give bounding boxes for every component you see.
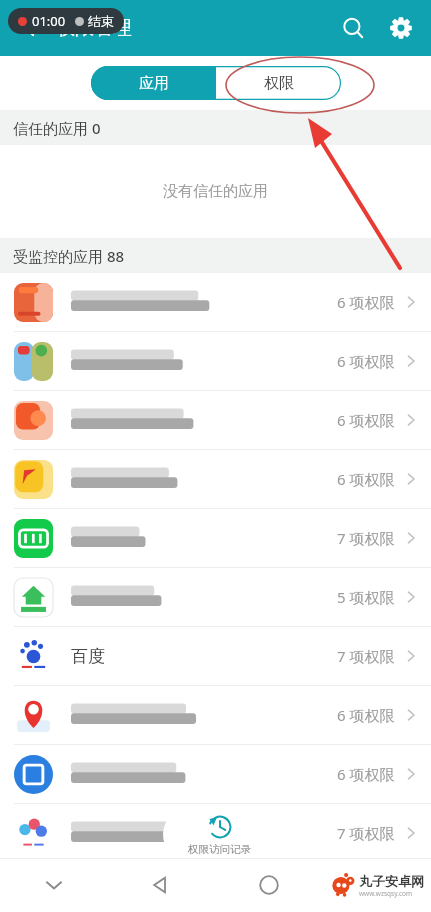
staticText: www.wzsqsy.com [359,889,413,898]
button[interactable]: 5 项权限 [0,568,431,626]
staticText: 6 项权限 [337,764,395,784]
button[interactable]: 7 项权限 [0,804,431,862]
staticText: 权限管理 [56,16,132,40]
staticText: 7 项权限 [337,528,395,548]
button[interactable]: 6 项权限 [0,391,431,449]
staticText: 6 项权限 [337,705,395,725]
staticText: 01:00 [32,12,66,30]
button[interactable]: 7 项权限 [0,509,431,567]
staticText: 6 项权限 [337,469,395,489]
button[interactable]: 返回 [6,4,54,52]
staticText: 6 项权限 [337,410,395,430]
staticText: 受监控的应用 88 [13,246,125,266]
staticText: 5 项权限 [337,587,395,607]
button[interactable]: 6 项权限 [0,273,431,331]
staticText: 没有信任的应用 [163,182,268,201]
button[interactable]: 搜索 [329,4,377,52]
staticText: 6 项权限 [337,292,395,312]
staticText: 百度 [71,646,105,667]
button[interactable]: 主页 [215,858,323,912]
button[interactable]: 返回 [107,858,215,912]
staticText: 7 项权限 [337,646,395,666]
staticText: 丸子安卓网 [359,873,424,889]
staticText: 结束 [88,13,114,29]
button[interactable]: 收起 [0,858,107,912]
staticText: 权限访问记录 [188,843,251,856]
staticText: 应用 [139,74,169,93]
button[interactable]: 6 项权限 [0,686,431,744]
button[interactable]: 设置 [377,4,425,52]
button[interactable]: 百度 [0,627,431,685]
button[interactable]: 6 项权限 [0,450,431,508]
staticText: 7 项权限 [337,823,395,843]
staticText: 信任的应用 0 [13,118,101,138]
button[interactable]: 权限访问记录 [163,807,276,862]
staticText: 权限 [264,74,294,93]
button[interactable]: 6 项权限 [0,745,431,803]
button[interactable]: 6 项权限 [0,332,431,390]
button[interactable]: 应用 [91,66,216,100]
staticText: 6 项权限 [337,351,395,371]
button[interactable]: 权限 [216,66,341,100]
